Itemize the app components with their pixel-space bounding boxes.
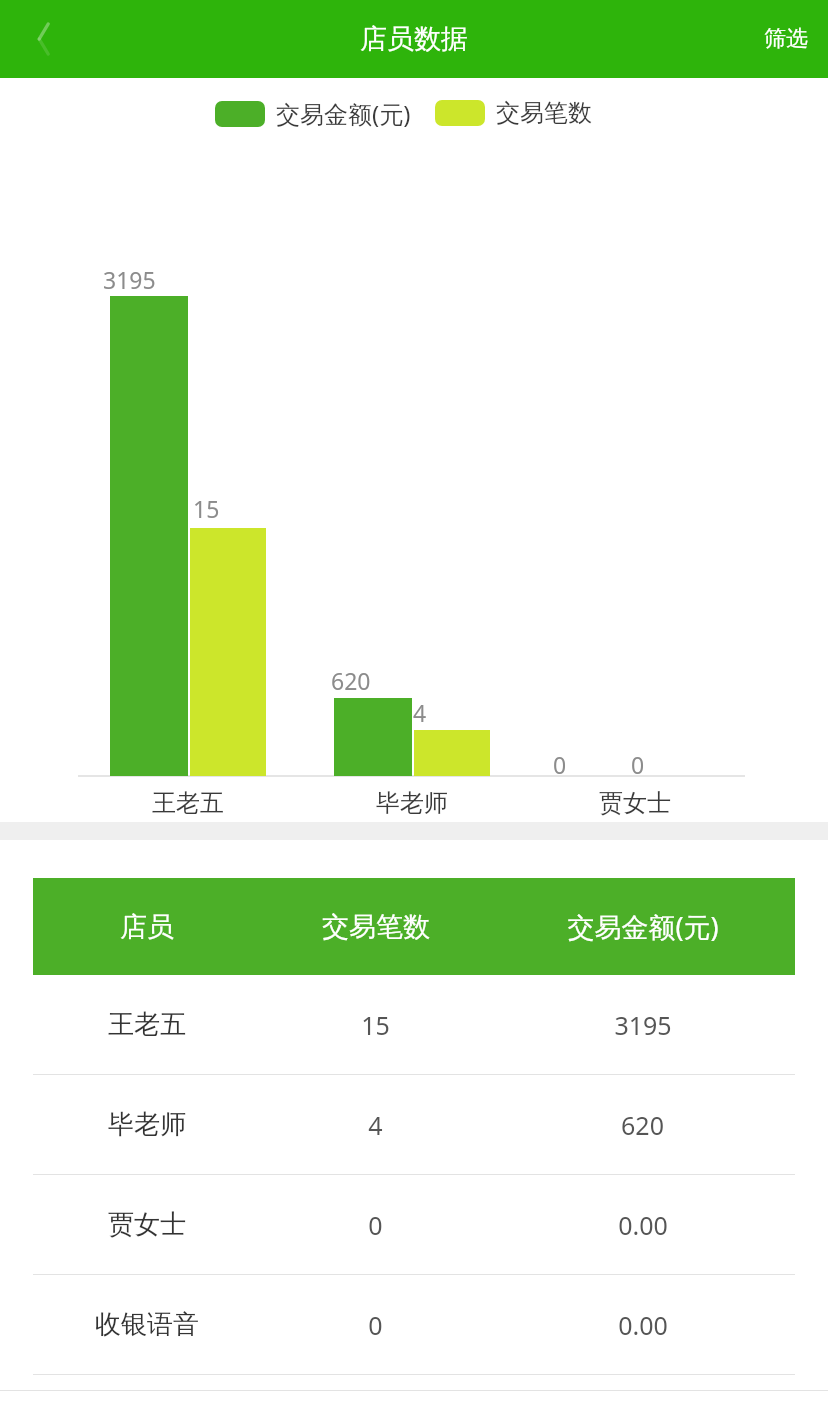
staticText: 620 xyxy=(331,665,371,696)
button[interactable]: 筛选 xyxy=(744,0,828,78)
staticText: 4 xyxy=(368,1108,383,1142)
button[interactable]: 贾女士 xyxy=(33,1175,795,1274)
staticText: 店员 xyxy=(120,910,174,944)
button[interactable]: 收银语音 xyxy=(33,1275,795,1374)
staticText: 15 xyxy=(361,1008,390,1042)
staticText: 交易笔数 xyxy=(496,98,592,128)
button[interactable]: Back xyxy=(0,0,78,78)
staticText: 3195 xyxy=(614,1008,672,1042)
staticText: 收银语音 xyxy=(95,1308,199,1341)
button[interactable]: 毕老师 xyxy=(33,1075,795,1174)
staticText: 毕老师 xyxy=(376,788,448,818)
staticText: 0 xyxy=(553,749,567,780)
staticText: 3195 xyxy=(103,264,156,295)
staticText: 毕老师 xyxy=(108,1108,186,1141)
staticText: 0 xyxy=(368,1208,383,1242)
staticText: 0.00 xyxy=(618,1308,668,1342)
staticText: 交易笔数 xyxy=(322,910,430,944)
staticText: 王老五 xyxy=(108,1008,186,1041)
button[interactable]: 王老五 xyxy=(33,975,795,1074)
staticText: 0 xyxy=(368,1308,383,1342)
staticText: 贾女士 xyxy=(108,1208,186,1241)
staticText: 交易金额(元) xyxy=(276,97,411,130)
staticText: 0.00 xyxy=(618,1208,668,1242)
staticText: 贾女士 xyxy=(599,788,671,818)
staticText: 店员数据 xyxy=(360,22,468,56)
staticText: 0 xyxy=(631,749,645,780)
staticText: 15 xyxy=(193,493,220,524)
staticText: 筛选 xyxy=(764,25,808,53)
staticText: 交易金额(元) xyxy=(567,908,719,945)
staticText: 王老五 xyxy=(152,788,224,818)
staticText: 620 xyxy=(621,1108,664,1142)
staticText: 4 xyxy=(413,697,427,728)
